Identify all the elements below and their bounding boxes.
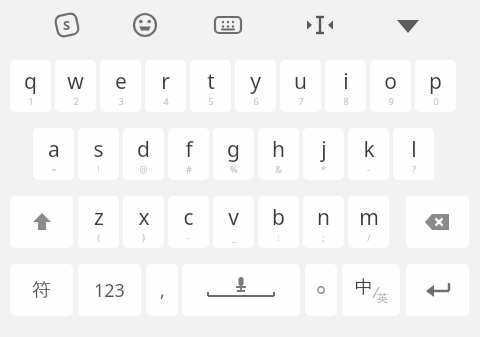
staticText: k [363,135,375,164]
staticText: h [272,135,285,164]
staticText: - [367,163,370,175]
button[interactable]: l [393,128,434,180]
staticText: ( [97,231,100,243]
button[interactable]: x [123,196,164,248]
button[interactable]: f [168,128,209,180]
button[interactable]: Hide keyboard [393,10,423,40]
staticText: i [343,67,349,96]
button[interactable]: v [213,196,254,248]
staticText: q [24,67,37,96]
button[interactable]: , [146,264,178,316]
button[interactable]: Sogou input [52,10,82,40]
staticText: w [67,67,84,96]
staticText: z [94,203,104,232]
staticText: 3 [118,95,124,107]
staticText: 0 [433,95,439,107]
staticText: : [277,231,280,243]
staticText: n [317,203,330,232]
staticText: s [93,135,104,164]
staticText: x [138,203,150,232]
button[interactable]: h [258,128,299,180]
button[interactable]: j [303,128,344,180]
staticText: y [250,67,261,96]
staticText: v [228,203,239,232]
button[interactable]: Space [182,264,300,316]
button[interactable]: k [348,128,389,180]
staticText: 2 [73,95,79,107]
button[interactable]: n [303,196,344,248]
button[interactable]: Chinese English toggle [342,264,400,316]
staticText: t [207,67,215,96]
staticText: l [411,135,417,164]
button[interactable]: b [258,196,299,248]
button[interactable]: u [280,60,321,112]
staticText: g [227,135,240,164]
staticText: d [137,135,150,164]
staticText: * [321,163,326,175]
button[interactable]: s [78,128,119,180]
staticText: # [186,163,192,175]
staticText: ~ [51,163,57,175]
button[interactable]: Enter [406,264,469,316]
staticText: % [230,163,238,175]
staticText: 5 [208,95,214,107]
button[interactable]: 123 [78,264,141,316]
staticText: b [272,203,285,232]
staticText: c [183,203,194,232]
button[interactable]: i [325,60,366,112]
button[interactable]: o [370,60,411,112]
staticText: m [359,203,379,232]
button[interactable]: Period [305,264,337,316]
button[interactable]: m [348,196,389,248]
button[interactable]: Backspace [406,196,469,248]
staticText: 符 [32,278,51,302]
staticText: 6 [253,95,259,107]
staticText: 4 [163,95,169,107]
staticText: u [294,67,307,96]
button[interactable]: Emoji [130,10,160,40]
staticText: , [160,278,165,303]
staticText: 中 [355,276,373,299]
button[interactable]: z [78,196,119,248]
button[interactable]: Move cursor [305,10,335,40]
staticText: 英 [377,291,388,305]
button[interactable]: d [123,128,164,180]
button[interactable]: Keyboard layout [213,10,243,40]
staticText: ; [322,231,325,243]
staticText: j [321,135,327,164]
staticText: - [187,231,190,243]
staticText: 123 [94,278,125,303]
staticText: 7 [298,95,304,107]
staticText: e [115,67,127,96]
staticText: r [161,67,170,96]
button[interactable]: p [415,60,456,112]
staticText: f [185,135,193,164]
button[interactable]: y [235,60,276,112]
staticText: & [275,163,282,175]
button[interactable]: a [33,128,74,180]
staticText: a [48,135,60,164]
button[interactable]: Shift [10,196,73,248]
staticText: S [63,16,71,34]
staticText: 8 [343,95,349,107]
staticText: _ [232,231,236,243]
button[interactable]: q [10,60,51,112]
staticText: 9 [388,95,394,107]
button[interactable]: 符 [10,264,73,316]
staticText: p [429,67,442,96]
button[interactable]: c [168,196,209,248]
button[interactable]: w [55,60,96,112]
button[interactable]: t [190,60,231,112]
staticText: ? [412,163,416,175]
staticText: o [384,67,397,96]
button[interactable]: r [145,60,186,112]
staticText: / [367,231,371,243]
button[interactable]: g [213,128,254,180]
staticText: ! [97,163,100,175]
staticText: ) [142,231,145,243]
button[interactable]: e [100,60,141,112]
staticText: 1 [28,95,34,107]
staticText: @ [139,163,148,175]
